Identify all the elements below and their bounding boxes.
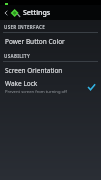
staticText: Settings <box>23 8 51 18</box>
button[interactable]: Power Button Color <box>0 33 101 49</box>
staticText: Prevent screen from turning off <box>5 89 67 95</box>
staticText: USER INTERFACE <box>4 24 46 30</box>
staticText: Power Button Color <box>5 37 65 46</box>
staticText: USABILITY <box>4 53 31 59</box>
button[interactable]: Back <box>0 5 101 20</box>
staticText: Screen Orientation <box>5 66 63 75</box>
staticText: Wake Lock <box>5 79 38 88</box>
button[interactable]: Back <box>2 9 9 16</box>
button[interactable]: Wake Lock <box>0 78 101 96</box>
button[interactable]: Wake Lock checkbox <box>87 83 96 92</box>
button[interactable]: Screen Orientation <box>0 62 101 78</box>
